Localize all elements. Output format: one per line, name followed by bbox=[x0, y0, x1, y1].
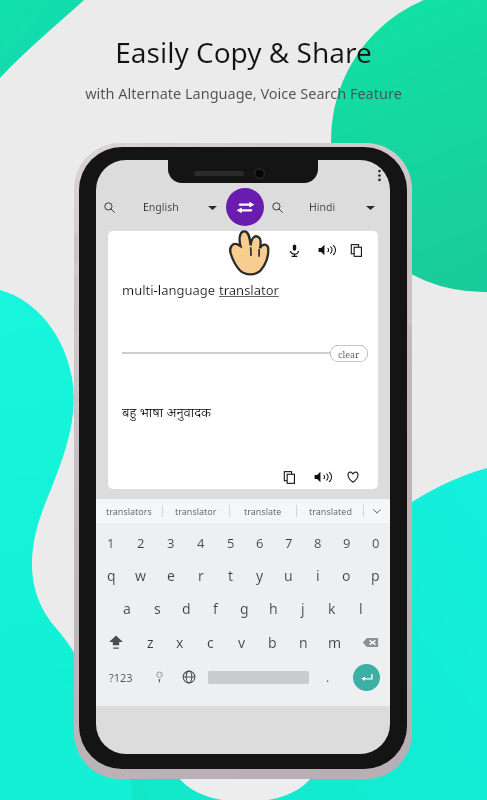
button[interactable]: l bbox=[346, 592, 375, 625]
staticText: m bbox=[328, 633, 342, 652]
button[interactable]: h bbox=[259, 592, 288, 625]
button[interactable]: Add to favourites bbox=[340, 465, 366, 489]
button[interactable]: g bbox=[230, 592, 259, 625]
button[interactable]: 8 bbox=[303, 526, 332, 559]
button[interactable]: translators bbox=[96, 499, 162, 523]
button[interactable]: Swap languages bbox=[226, 188, 264, 226]
staticText: translator bbox=[219, 281, 279, 299]
button[interactable]: 4 bbox=[186, 526, 216, 559]
button[interactable]: Change keyboard language bbox=[174, 659, 203, 695]
button[interactable]: Enter bbox=[353, 664, 380, 691]
button[interactable]: Choose source language bbox=[199, 192, 225, 222]
button[interactable]: d bbox=[172, 592, 201, 625]
button[interactable]: Speak source text bbox=[312, 237, 338, 263]
button[interactable]: z bbox=[135, 625, 165, 659]
button[interactable]: c bbox=[195, 625, 226, 659]
button[interactable]: . bbox=[313, 659, 342, 695]
button[interactable]: Emoji and comma bbox=[145, 659, 174, 695]
button[interactable]: Hindi bbox=[289, 192, 355, 222]
staticText: v bbox=[238, 633, 246, 652]
button[interactable]: translate bbox=[230, 499, 296, 523]
button[interactable]: Choose target language bbox=[355, 192, 385, 222]
button[interactable]: b bbox=[257, 625, 288, 659]
staticText: k bbox=[328, 599, 336, 618]
staticText: 4 bbox=[197, 534, 205, 552]
button[interactable]: s bbox=[142, 592, 172, 625]
staticText: बहु भाषा अनुवादक bbox=[122, 403, 212, 421]
button[interactable]: a bbox=[112, 592, 142, 625]
button[interactable]: translated bbox=[297, 499, 363, 523]
button[interactable]: p bbox=[361, 559, 390, 592]
staticText: b bbox=[268, 633, 277, 652]
staticText: with Alternate Language, Voice Search Fe… bbox=[85, 83, 402, 103]
button[interactable]: x bbox=[165, 625, 195, 659]
staticText: 7 bbox=[285, 534, 293, 552]
staticText: a bbox=[123, 599, 131, 618]
staticText: 3 bbox=[167, 534, 175, 552]
staticText: 5 bbox=[227, 534, 235, 552]
button[interactable]: 3 bbox=[156, 526, 186, 559]
button[interactable]: r bbox=[186, 559, 216, 592]
button[interactable]: o bbox=[332, 559, 361, 592]
button[interactable]: 7 bbox=[274, 526, 303, 559]
staticText: n bbox=[299, 633, 308, 652]
staticText: multi-language bbox=[122, 281, 219, 299]
staticText: w bbox=[135, 566, 147, 585]
button[interactable]: Search target language bbox=[265, 192, 289, 222]
button[interactable]: 6 bbox=[245, 526, 274, 559]
staticText: o bbox=[342, 566, 351, 585]
button[interactable]: English bbox=[123, 192, 199, 222]
staticText: clear bbox=[338, 348, 360, 360]
staticText: c bbox=[207, 633, 214, 652]
button[interactable]: m bbox=[319, 625, 350, 659]
button[interactable]: n bbox=[288, 625, 319, 659]
staticText: 8 bbox=[314, 534, 322, 552]
button[interactable]: y bbox=[245, 559, 274, 592]
staticText: translators bbox=[106, 505, 152, 517]
staticText: . bbox=[326, 669, 330, 685]
button[interactable]: Voice input bbox=[281, 237, 307, 263]
button[interactable]: Copy translation bbox=[276, 465, 302, 489]
button[interactable]: v bbox=[226, 625, 257, 659]
button[interactable]: 5 bbox=[216, 526, 245, 559]
staticText: 6 bbox=[256, 534, 264, 552]
button[interactable]: f bbox=[201, 592, 230, 625]
button[interactable]: j bbox=[288, 592, 317, 625]
staticText: z bbox=[147, 633, 154, 652]
button[interactable]: i bbox=[303, 559, 332, 592]
button[interactable]: Search source language bbox=[96, 192, 123, 222]
staticText: q bbox=[107, 566, 116, 585]
staticText: f bbox=[213, 599, 218, 618]
staticText: j bbox=[301, 599, 305, 618]
button[interactable]: clear bbox=[330, 345, 368, 362]
button[interactable]: e bbox=[156, 559, 186, 592]
button[interactable]: 2 bbox=[126, 526, 156, 559]
button[interactable]: ?123 bbox=[96, 659, 145, 695]
staticText: u bbox=[284, 566, 293, 585]
button[interactable]: u bbox=[274, 559, 303, 592]
button[interactable]: w bbox=[126, 559, 156, 592]
button[interactable]: t bbox=[216, 559, 245, 592]
button[interactable]: 1 bbox=[96, 526, 126, 559]
staticText: h bbox=[269, 599, 278, 618]
staticText: y bbox=[256, 566, 264, 585]
staticText: x bbox=[176, 633, 184, 652]
button[interactable]: 0 bbox=[361, 526, 390, 559]
button[interactable]: Copy source text bbox=[343, 237, 369, 263]
button[interactable]: Backspace bbox=[350, 625, 390, 659]
staticText: l bbox=[359, 599, 363, 618]
staticText: Easily Copy & Share bbox=[115, 33, 372, 71]
button[interactable]: Speak translation bbox=[308, 465, 334, 489]
button[interactable]: More suggestions bbox=[364, 499, 390, 523]
staticText: English bbox=[143, 200, 179, 214]
button[interactable]: More options bbox=[368, 164, 390, 186]
button[interactable]: translator bbox=[163, 499, 229, 523]
button[interactable]: k bbox=[317, 592, 346, 625]
button[interactable]: Space bbox=[203, 659, 313, 695]
button[interactable]: Shift bbox=[96, 625, 135, 659]
staticText: 0 bbox=[372, 534, 380, 552]
staticText: ?123 bbox=[109, 670, 133, 685]
button[interactable]: 9 bbox=[332, 526, 361, 559]
button[interactable]: q bbox=[96, 559, 126, 592]
staticText: d bbox=[182, 599, 191, 618]
